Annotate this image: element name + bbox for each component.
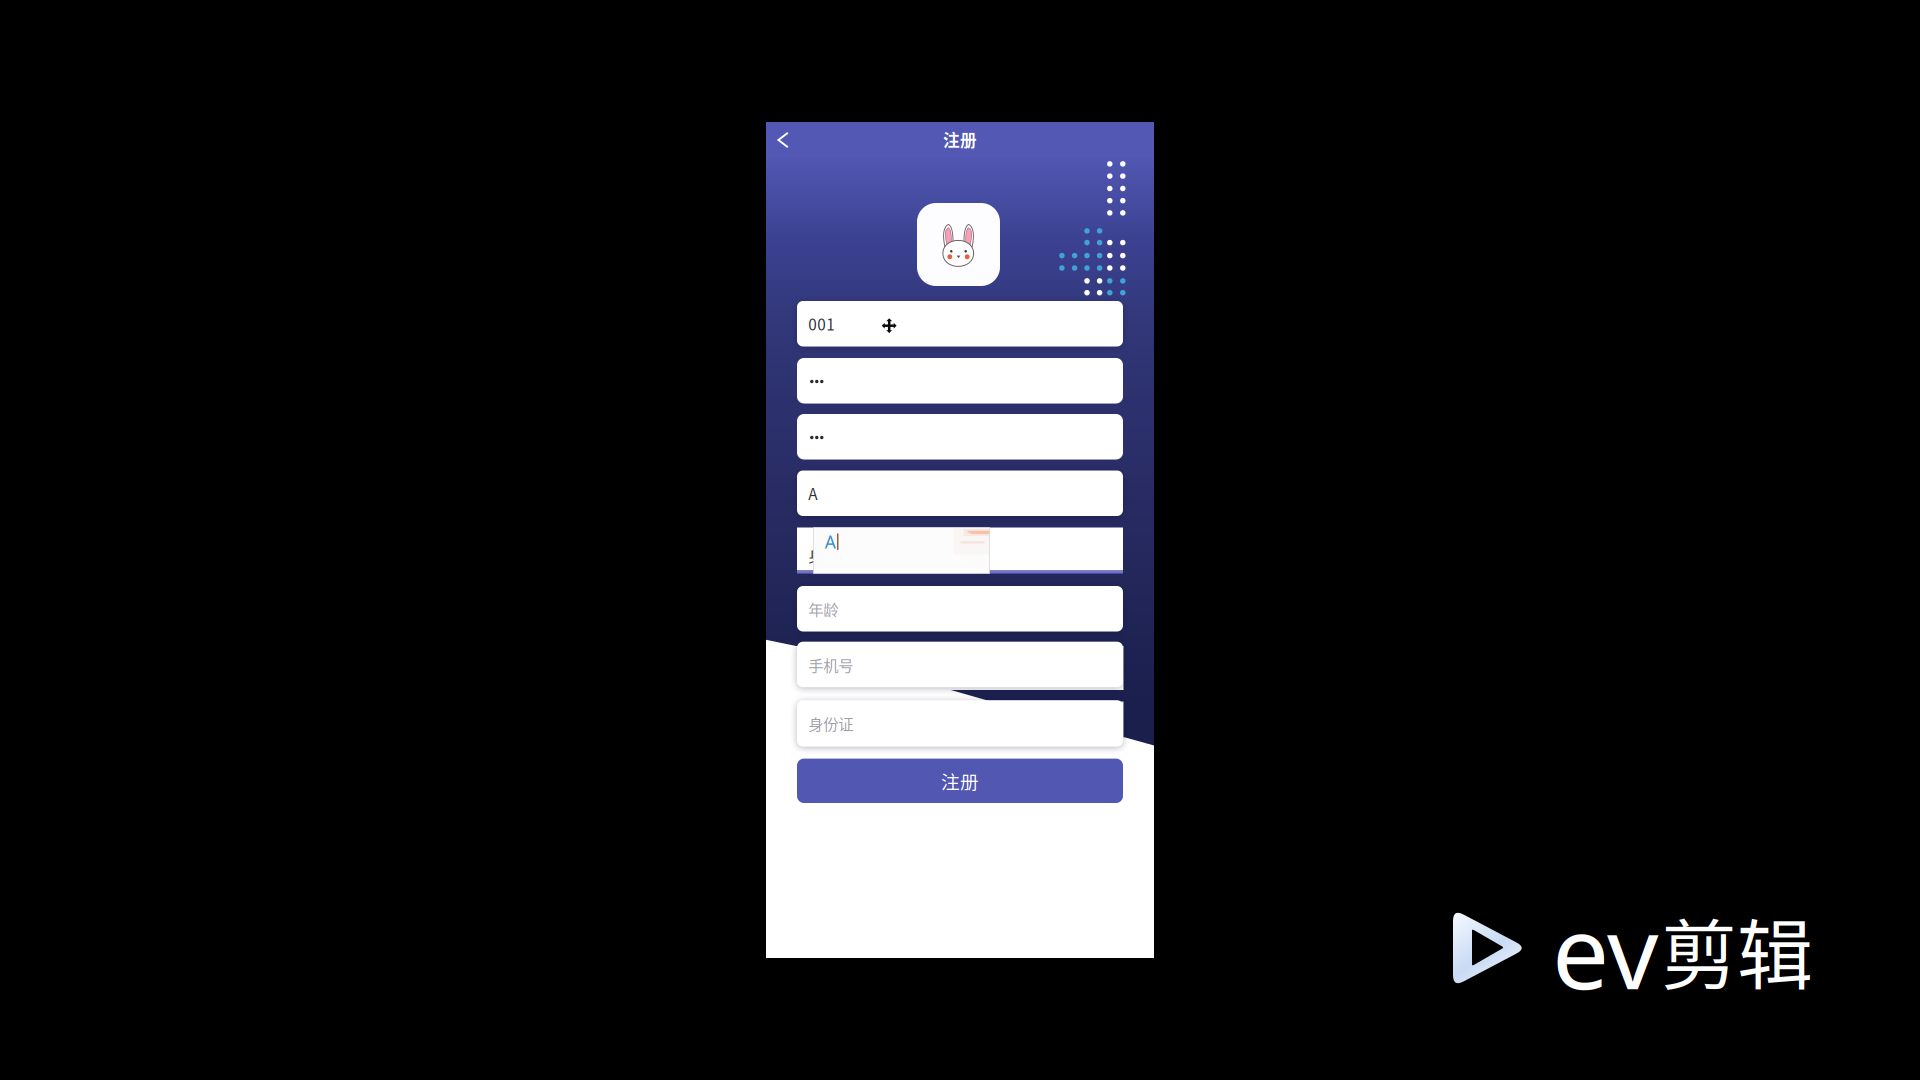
staticText: 年龄 [808,598,838,620]
staticText: 身 [808,544,823,566]
staticText: 注册 [941,767,979,794]
button[interactable]: 身 [797,527,1123,570]
button[interactable]: 注册 [797,759,1123,803]
staticText: A [825,530,836,553]
button[interactable]: A [797,470,1123,516]
staticText: 剪辑 [1661,895,1813,1005]
staticText: 手机号 [808,653,853,675]
staticText: A [808,482,817,504]
staticText: 001 [808,313,835,335]
button[interactable]: 年龄 [797,586,1123,631]
button[interactable]: 身份证 [797,700,1123,747]
button[interactable]: Back [766,122,800,157]
button[interactable]: 手机号 [797,642,1123,687]
button[interactable] [797,414,1123,459]
staticText: 注册 [943,127,977,151]
staticText: ev [1552,881,1658,1019]
staticText: 身份证 [808,712,853,734]
button[interactable] [797,358,1123,403]
button[interactable]: 001 [797,301,1123,346]
